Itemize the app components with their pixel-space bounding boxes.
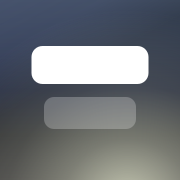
button[interactable]: Primary action — [31, 46, 148, 84]
button[interactable]: Secondary action — [44, 97, 136, 129]
